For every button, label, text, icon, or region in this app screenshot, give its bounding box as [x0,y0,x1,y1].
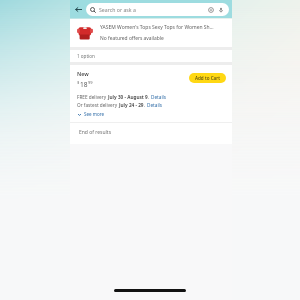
button[interactable]: Search or ask a question [86,3,229,16]
button[interactable]: Add to Cart [189,73,226,83]
staticText: . [148,94,151,100]
staticText: FREE delivery [77,94,108,100]
staticText: 18 [80,80,88,89]
staticText: 99 [88,80,93,85]
staticText: $ [77,80,80,85]
button[interactable]: Details [147,102,163,108]
button[interactable]: Details [151,94,167,100]
button[interactable]: Voice search [217,6,225,14]
button[interactable]: YASEM Women's Tops Sexy Tops for Women S… [70,19,232,47]
staticText: . [144,102,147,108]
staticText: End of results [79,129,112,136]
staticText: Search or ask a question [99,6,153,13]
staticText: No featured offers available [100,35,164,42]
staticText: July 24 - 29 [119,102,144,108]
staticText: Or fastest delivery [77,102,119,108]
staticText: July 30 - August 9 [108,94,148,100]
button[interactable]: See more [77,111,104,117]
staticText: See more [84,111,104,117]
staticText: New [77,70,89,77]
button[interactable]: Back [73,4,84,15]
staticText: 1 option [77,53,95,59]
staticText: Add to Cart [195,75,220,81]
staticText: YASEM Women's Tops Sexy Tops for Women S… [100,24,214,31]
button[interactable]: Search by image [207,6,215,14]
